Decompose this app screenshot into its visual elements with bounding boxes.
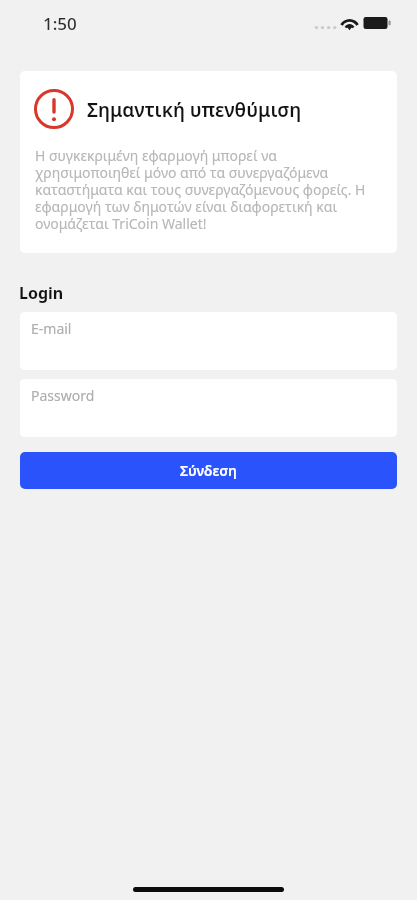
other: Battery — [363, 17, 392, 29]
staticText: Login — [19, 282, 64, 304]
staticText: 1:50 — [43, 12, 77, 35]
staticText: Password — [31, 386, 95, 405]
staticText: Η συγκεκριμένη εφαρμογή μπορεί να χρησιμ… — [35, 148, 379, 233]
button[interactable]: E-mail — [20, 312, 397, 370]
staticText: Σημαντική υπενθύμιση — [87, 97, 302, 123]
button[interactable]: Password — [20, 379, 397, 437]
other: Wi-Fi — [339, 15, 360, 31]
staticText: E-mail — [31, 319, 72, 338]
staticText: Σύνδεση — [180, 461, 237, 480]
button[interactable]: Σύνδεση — [20, 452, 397, 489]
other: Warning — [34, 89, 74, 129]
